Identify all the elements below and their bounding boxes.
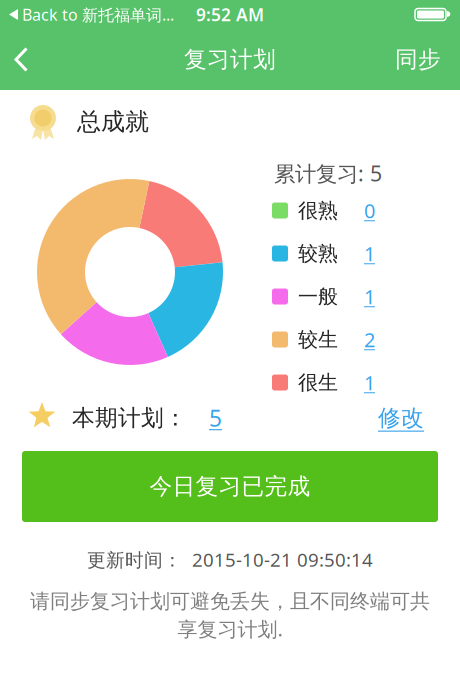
staticText: 今日复习已完成 (149, 473, 310, 500)
staticText: 1 (364, 283, 375, 310)
staticText: 享复习计划. (177, 616, 282, 642)
button[interactable]: 1 (364, 369, 375, 396)
staticText: 很熟 (298, 198, 338, 223)
staticText: Back to 新托福单词... (22, 4, 174, 25)
staticText: 2 (364, 326, 375, 353)
staticText: 更新时间： 2015-10-21 09:50:14 (87, 547, 373, 572)
staticText: 累计复习: 5 (274, 159, 382, 187)
button[interactable]: 修改 (378, 404, 424, 432)
staticText: 较生 (298, 327, 338, 352)
button[interactable]: 0 (364, 197, 375, 224)
staticText: 1 (364, 240, 375, 267)
staticText: 一般 (298, 284, 338, 309)
button[interactable]: Back (0, 30, 29, 88)
button[interactable]: 同步 (395, 46, 460, 73)
staticText: 5 (209, 403, 222, 433)
staticText: 很生 (298, 370, 338, 395)
staticText: 较熟 (298, 241, 338, 266)
staticText: 修改 (378, 404, 424, 432)
staticText: 请同步复习计划可避免丢失，且不同终端可共 (30, 589, 430, 614)
button[interactable]: 2 (364, 326, 375, 353)
button[interactable]: 5 (209, 403, 222, 433)
button[interactable]: 1 (364, 283, 375, 310)
button[interactable]: 1 (364, 240, 375, 267)
staticText: 0 (364, 197, 375, 224)
staticText: 同步 (395, 46, 441, 73)
staticText: 本期计划： (72, 404, 187, 432)
staticText: 9:52 AM (196, 3, 264, 26)
button[interactable]: 今日复习已完成 (22, 451, 438, 522)
staticText: 总成就 (77, 107, 149, 136)
staticText: 1 (364, 369, 375, 396)
button[interactable]: Back to 新托福单词... (9, 4, 174, 25)
staticText: 复习计划 (184, 46, 276, 73)
